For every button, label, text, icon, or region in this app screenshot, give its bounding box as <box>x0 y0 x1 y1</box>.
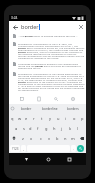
staticText: providing for consideration of the H.R. … <box>18 42 85 60</box>
button[interactable]: Documents <box>35 95 43 103</box>
staticText: ... the border patrol to mobilize standa… <box>18 34 78 37</box>
staticText: e <box>25 116 28 121</box>
button[interactable]: borders <box>61 104 84 113</box>
button[interactable]: Home <box>43 154 53 164</box>
button[interactable]: p <box>78 113 86 123</box>
staticText: o <box>73 116 76 121</box>
staticText: k <box>69 126 72 131</box>
button[interactable]: z <box>18 133 27 143</box>
button[interactable]: k <box>66 123 74 133</box>
button[interactable]: o <box>70 113 78 123</box>
staticText: c <box>40 136 42 141</box>
button[interactable]: u <box>54 113 62 123</box>
staticText: ?123 <box>12 147 19 151</box>
staticText: d <box>29 126 32 131</box>
staticText: s <box>23 126 25 131</box>
button[interactable]: Back <box>11 23 19 31</box>
staticText: w <box>18 116 22 121</box>
staticText: p <box>81 116 84 121</box>
staticText: . <box>73 147 74 151</box>
button[interactable]: ?123 <box>10 145 20 152</box>
button[interactable]: Backspace <box>77 133 86 143</box>
staticText: a <box>15 126 18 131</box>
staticText: , <box>23 147 24 151</box>
staticText: i <box>65 116 67 121</box>
button[interactable]: x <box>27 133 36 143</box>
button[interactable]: q <box>9 113 16 123</box>
button[interactable]: Recents <box>64 154 74 164</box>
button[interactable]: a <box>13 123 20 133</box>
staticText: providing for consideration of the Senat… <box>18 72 85 92</box>
button[interactable]: d <box>27 123 34 133</box>
button[interactable]: providing for consideration of the H.R. … <box>9 42 86 60</box>
staticText: j <box>61 126 63 131</box>
staticText: borderline <box>42 107 58 111</box>
staticText: r <box>33 116 35 121</box>
button[interactable]: Voice input <box>10 106 15 111</box>
staticText: g <box>45 126 48 131</box>
staticText: z <box>22 136 24 141</box>
button[interactable]: v <box>45 133 53 143</box>
button[interactable]: borderline <box>38 104 61 113</box>
button[interactable]: j <box>58 123 66 133</box>
button[interactable]: s <box>20 123 27 133</box>
staticText: u <box>57 116 60 121</box>
button[interactable]: Search <box>77 145 84 152</box>
button[interactable]: Bookmarks <box>18 95 26 103</box>
button[interactable]: , <box>21 145 26 152</box>
staticText: Committee amendments printed in the cong… <box>18 62 85 70</box>
button[interactable]: g <box>42 123 50 133</box>
button[interactable]: Back <box>9 21 86 32</box>
staticText: l <box>77 126 79 131</box>
button[interactable]: y <box>46 113 54 123</box>
button[interactable]: b <box>53 133 61 143</box>
staticText: border <box>21 23 39 30</box>
staticText: 3:24 <box>11 16 18 20</box>
button[interactable]: ... the border patrol to mobilize standa… <box>9 34 86 38</box>
staticText: q <box>11 116 14 121</box>
staticText: n <box>64 136 67 141</box>
button[interactable]: m <box>69 133 77 143</box>
button[interactable]: e <box>23 113 30 123</box>
staticText: h <box>53 126 56 131</box>
button[interactable]: Shift <box>9 133 18 143</box>
button[interactable]: l <box>74 123 82 133</box>
staticText: border <box>21 107 32 111</box>
button[interactable]: r <box>30 113 38 123</box>
staticText: y <box>49 116 52 121</box>
staticText: x <box>30 136 33 141</box>
button[interactable]: More <box>69 95 77 103</box>
staticText: v <box>48 136 51 141</box>
button[interactable]: Back <box>21 154 31 164</box>
button[interactable]: providing for consideration of the Senat… <box>9 72 86 92</box>
button[interactable]: h <box>50 123 58 133</box>
staticText: b <box>56 136 59 141</box>
button[interactable]: Clear <box>77 23 85 31</box>
button[interactable]: Committee amendments printed in the cong… <box>9 62 86 70</box>
button[interactable]: t <box>38 113 46 123</box>
button[interactable]: i <box>62 113 70 123</box>
button[interactable]: f <box>34 123 42 133</box>
button[interactable]: . <box>71 145 76 152</box>
button[interactable]: border <box>15 104 38 113</box>
staticText: borders <box>67 107 79 111</box>
staticText: m <box>71 136 75 141</box>
staticText: f <box>37 126 39 131</box>
staticText: t <box>41 116 43 121</box>
button[interactable]: w <box>16 113 23 123</box>
button[interactable]: Search <box>52 95 60 103</box>
button[interactable]: n <box>61 133 69 143</box>
button[interactable]: c <box>36 133 45 143</box>
